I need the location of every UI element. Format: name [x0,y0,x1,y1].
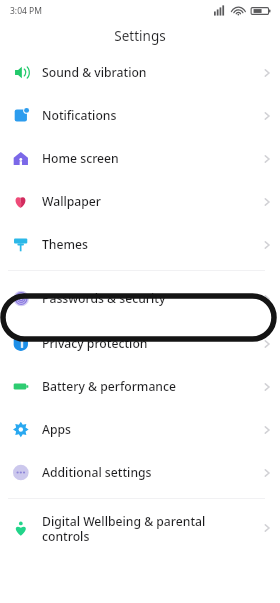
staticText: 3:04 PM [10,5,42,17]
staticText: Digital Wellbeing & parental controls [42,513,246,544]
staticText: Apps [42,421,246,438]
button[interactable]: Home screen [0,137,280,180]
staticText: Privacy protection [42,335,246,352]
button[interactable]: Notifications [0,94,280,137]
button[interactable]: Wallpaper [0,180,280,223]
staticText: Passwords & security [42,290,246,307]
staticText: Settings [114,27,166,45]
button[interactable]: Digital Wellbeing & parental controls [0,503,280,553]
button[interactable]: Passwords & security [0,275,280,322]
staticText: Home screen [42,150,246,167]
staticText: Additional settings [42,464,246,481]
button[interactable]: Battery & performance [0,365,280,408]
button[interactable]: Additional settings [0,451,280,494]
staticText: Themes [42,236,246,253]
button[interactable]: Privacy protection [0,322,280,365]
staticText: Wallpaper [42,193,246,210]
staticText: Sound & vibration [42,64,246,81]
staticText: Notifications [42,107,246,124]
staticText: Battery & performance [42,378,246,395]
button[interactable]: Apps [0,408,280,451]
button[interactable]: Sound & vibration [0,51,280,94]
button[interactable]: Themes [0,223,280,266]
